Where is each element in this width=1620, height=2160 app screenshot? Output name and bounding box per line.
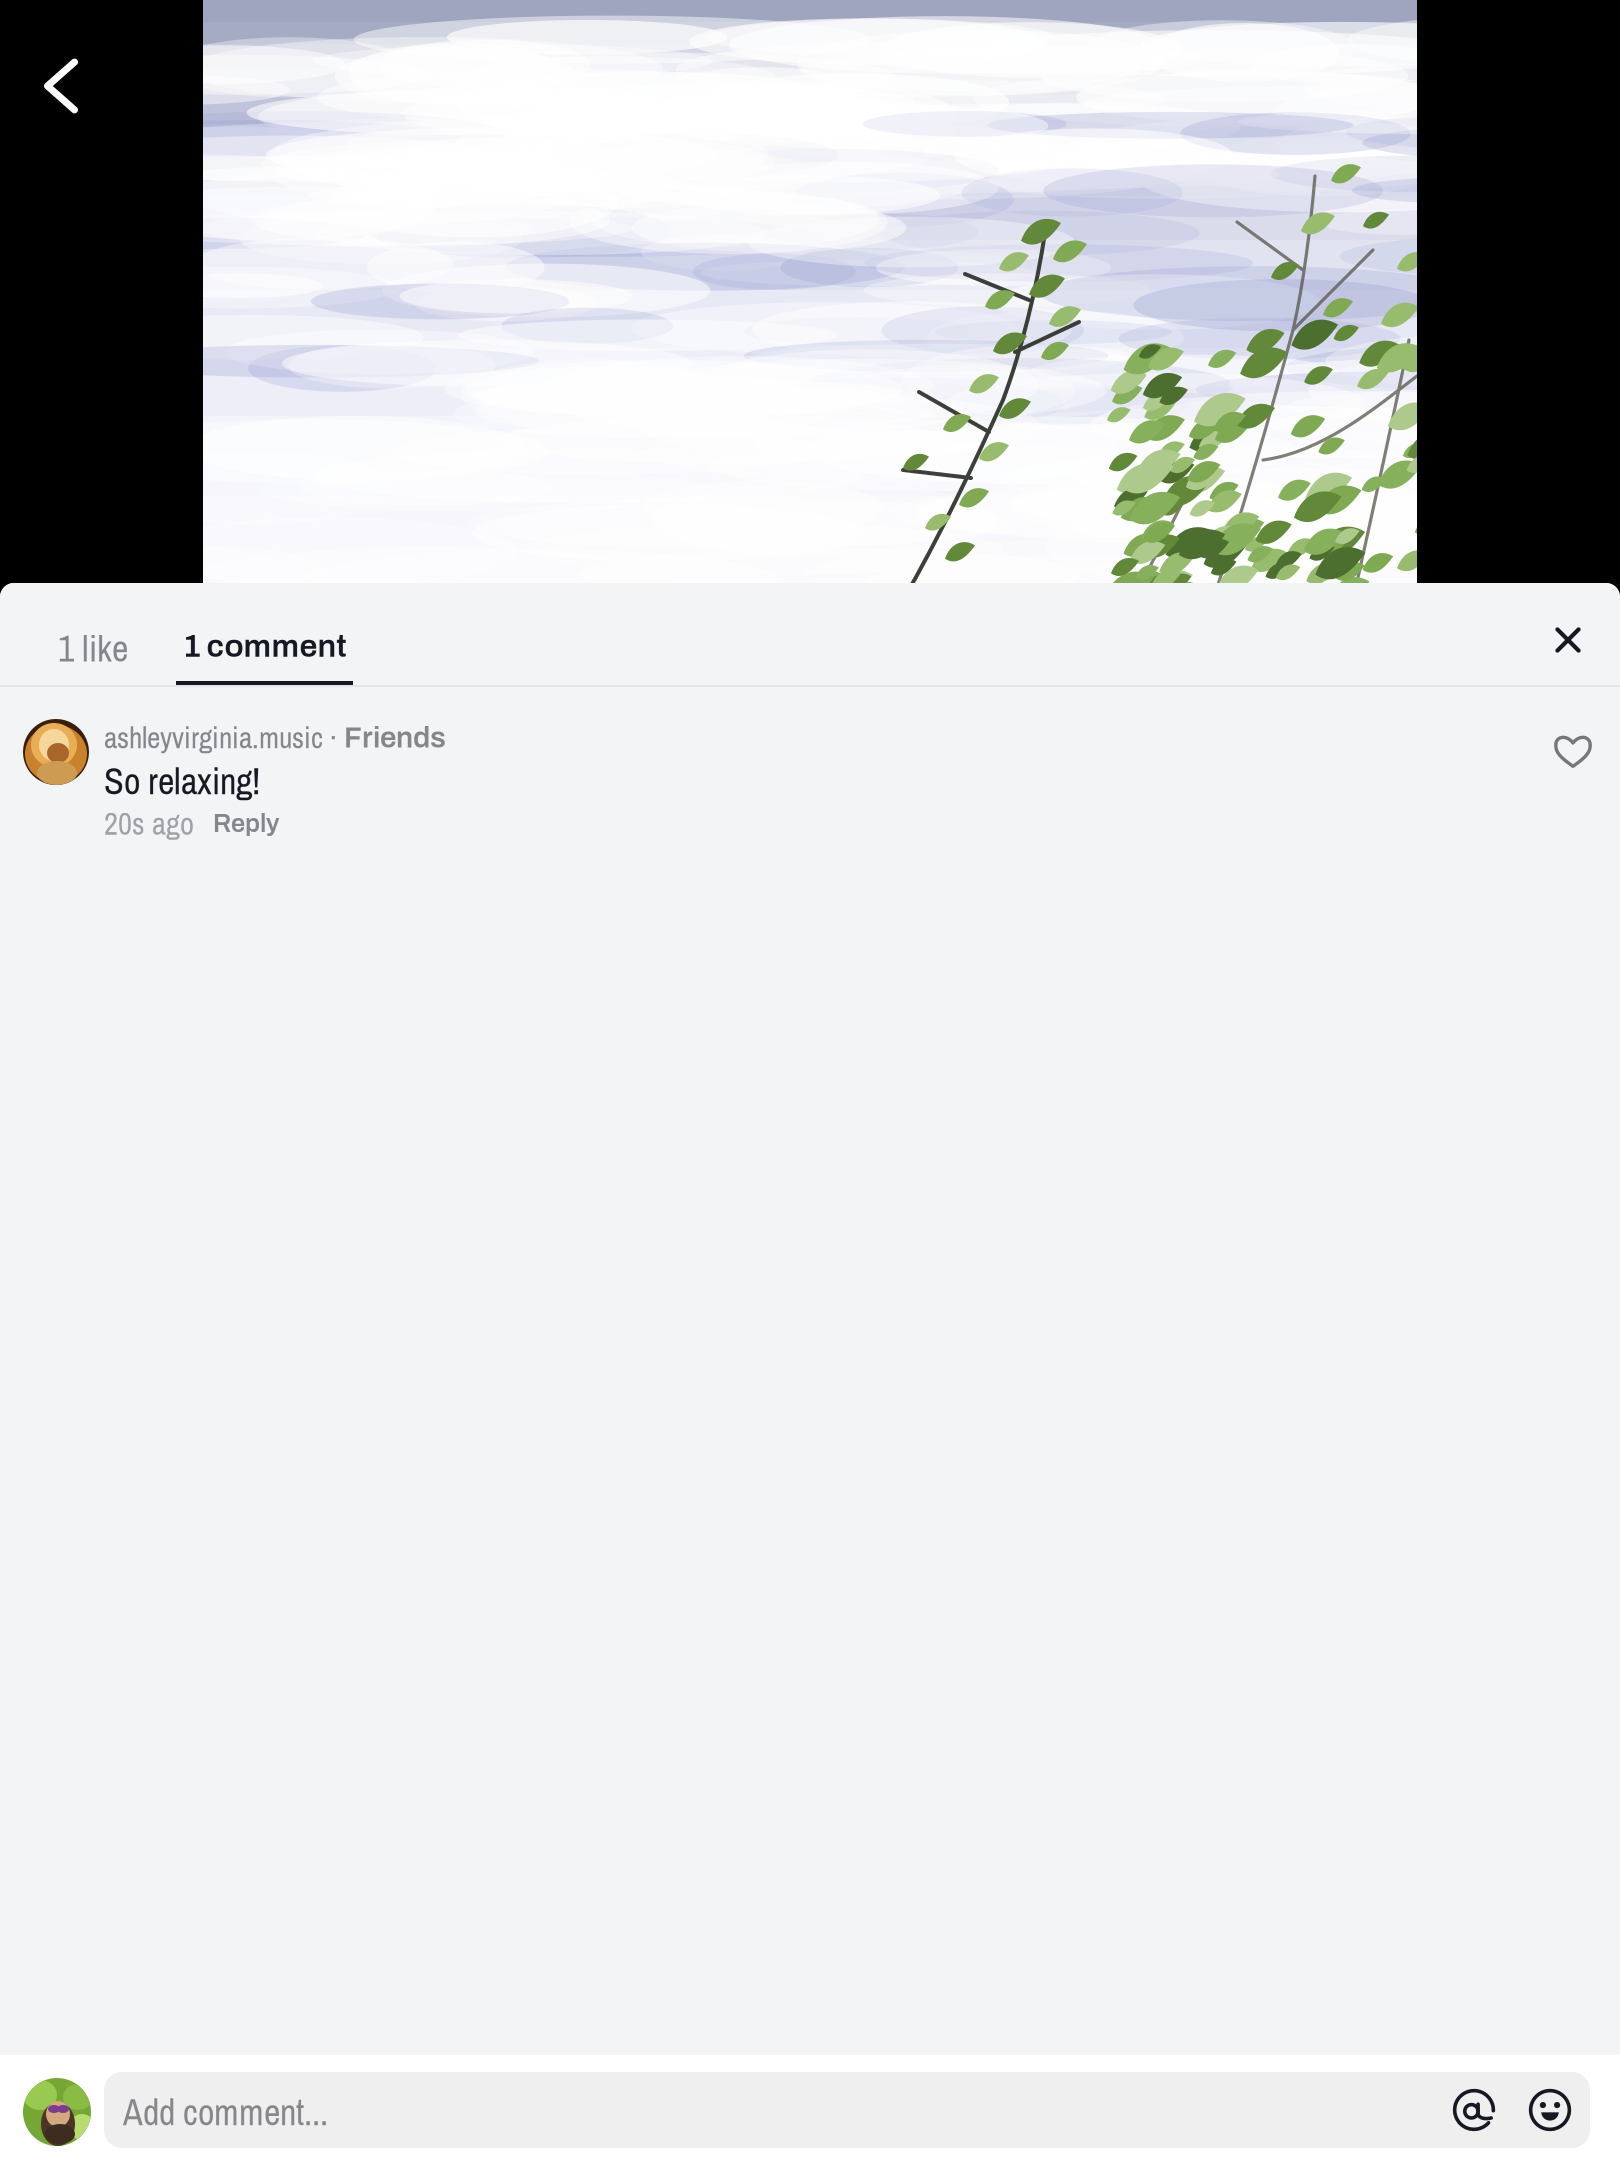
- staticText: So relaxing!: [104, 757, 260, 805]
- button[interactable]: Emoji: [1512, 2072, 1588, 2148]
- button[interactable]: Reply: [213, 810, 279, 837]
- button[interactable]: Like comment: [1537, 714, 1609, 786]
- button[interactable]: Close: [1520, 592, 1616, 688]
- staticText: Reply: [213, 810, 279, 837]
- button[interactable]: Back: [5, 30, 117, 142]
- staticText: Add comment...: [123, 2088, 328, 2136]
- staticText: 20s ago: [104, 803, 194, 844]
- staticText: Friends: [344, 722, 446, 754]
- button[interactable]: Mention: [1436, 2072, 1512, 2148]
- staticText: 1 comment: [182, 629, 346, 663]
- button[interactable]: 1 comment: [176, 599, 353, 701]
- button[interactable]: 1 like: [33, 599, 153, 698]
- staticText: 1 like: [58, 624, 128, 673]
- staticText: ashleyvirginia.music ·: [104, 718, 344, 757]
